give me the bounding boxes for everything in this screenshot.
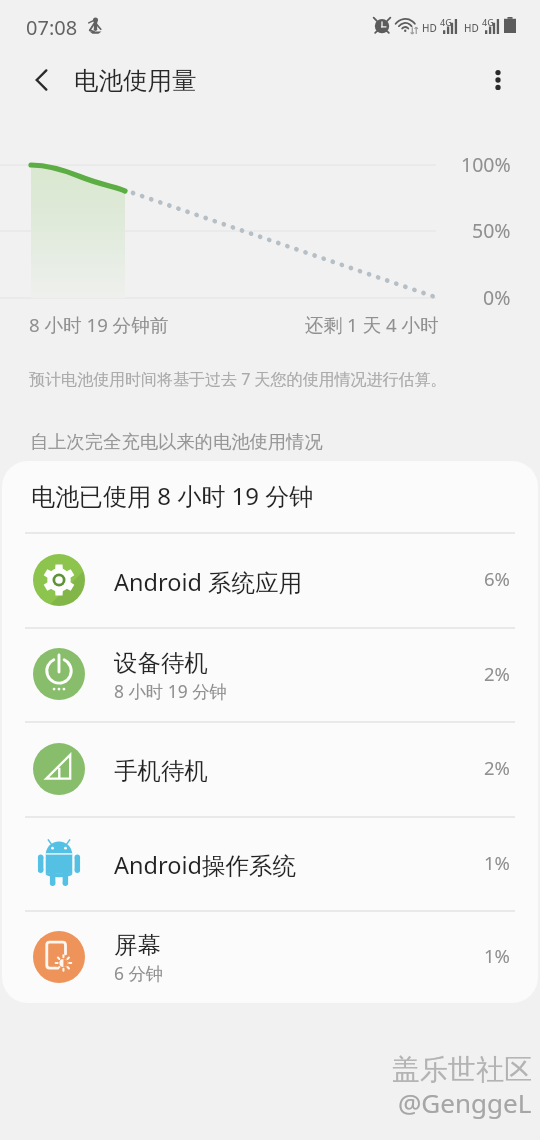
button[interactable]: More options xyxy=(472,54,524,106)
staticText: 6% xyxy=(484,566,510,591)
staticText: 屏幕 xyxy=(114,930,161,960)
staticText: 2% xyxy=(484,661,510,686)
button[interactable]: 设备待机 xyxy=(2,627,538,721)
staticText: 6 分钟 xyxy=(114,961,164,985)
staticText: 100% xyxy=(461,151,511,178)
staticText: 预计电池使用时间将基于过去 7 天您的使用情况进行估算。 xyxy=(29,368,447,390)
staticText: 电池已使用 8 小时 19 分钟 xyxy=(31,479,314,512)
button[interactable]: Android操作系统 xyxy=(2,816,538,910)
staticText: 电池使用量 xyxy=(74,65,197,96)
staticText: 1% xyxy=(484,943,510,968)
staticText: HD xyxy=(464,21,479,35)
staticText: 1% xyxy=(484,850,510,875)
button[interactable]: 屏幕 xyxy=(2,910,538,1003)
staticText: 8 小时 19 分钟 xyxy=(114,679,227,703)
staticText: 手机待机 xyxy=(114,756,208,786)
staticText: 自上次完全充电以来的电池使用情况 xyxy=(30,430,323,453)
staticText: 07:08 xyxy=(26,14,78,41)
staticText: 2% xyxy=(484,755,510,780)
staticText: 8 小时 19 分钟前 xyxy=(29,312,169,337)
staticText: 50% xyxy=(472,217,511,244)
staticText: HD xyxy=(422,21,437,35)
staticText: @GenggeL xyxy=(398,1085,532,1120)
staticText: 还剩 1 天 4 小时 xyxy=(305,312,439,337)
staticText: 0% xyxy=(483,284,511,311)
staticText: 4G xyxy=(482,16,494,28)
staticText: 盖乐世社区 xyxy=(392,1052,532,1087)
staticText: 设备待机 xyxy=(114,648,208,678)
staticText: Android 系统应用 xyxy=(114,566,303,598)
button[interactable]: Back xyxy=(16,54,68,106)
button[interactable]: 手机待机 xyxy=(2,721,538,816)
button[interactable]: Android 系统应用 xyxy=(2,532,538,627)
staticText: 4G xyxy=(440,16,452,28)
staticText: Android操作系统 xyxy=(114,849,296,881)
